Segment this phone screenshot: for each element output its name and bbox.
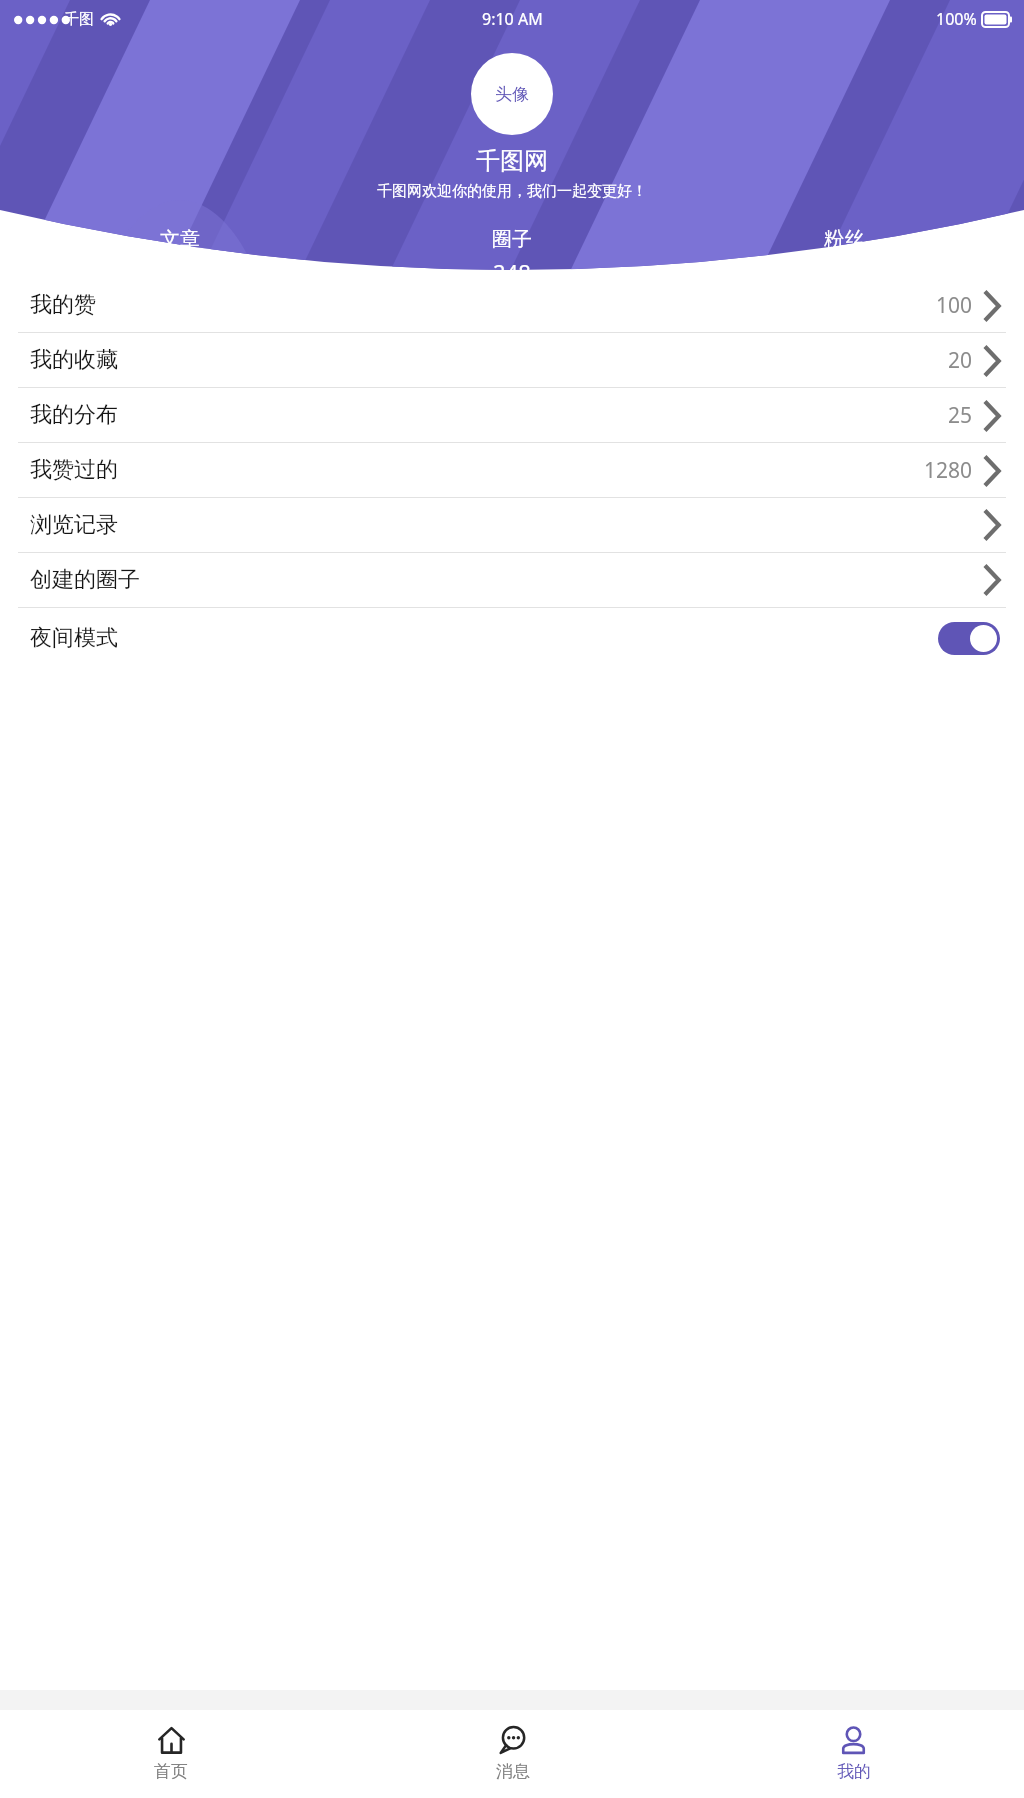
button[interactable]: 圈子 (346, 227, 678, 272)
staticText: 100% (936, 8, 977, 30)
staticText: 25 (948, 401, 973, 430)
staticText: 20 (948, 346, 973, 375)
staticText: 100 (936, 291, 973, 320)
button[interactable]: Avatar (471, 53, 553, 135)
staticText: 9:10 AM (482, 8, 543, 30)
staticText: 首页 (154, 1761, 188, 1782)
staticText: 千图 (64, 10, 94, 29)
staticText: 头像 (495, 84, 529, 105)
staticText: 文章 (160, 227, 200, 252)
button[interactable]: 创建的圈子 (0, 553, 1024, 607)
button[interactable]: 消息 (342, 1710, 683, 1798)
staticText: 248 (493, 257, 531, 272)
button[interactable]: 夜间模式 (0, 608, 1024, 668)
staticText: 我赞过的 (30, 456, 118, 484)
staticText: 浏览记录 (30, 511, 118, 539)
staticText: 我的 (837, 1761, 871, 1782)
button[interactable]: 我赞过的 (0, 443, 1024, 497)
staticText: 千图网 (476, 146, 548, 176)
button[interactable]: 首页 (0, 1710, 342, 1798)
staticText: 创建的圈子 (30, 566, 140, 594)
staticText: 圈子 (492, 227, 532, 252)
button[interactable]: 浏览记录 (0, 498, 1024, 552)
button[interactable]: Night mode toggle (938, 622, 1000, 655)
staticText: 我的收藏 (30, 346, 118, 374)
button[interactable]: 我的分布 (0, 388, 1024, 442)
button[interactable]: 我的赞 (0, 278, 1024, 332)
staticText: 消息 (496, 1761, 530, 1782)
staticText: 我的赞 (30, 291, 96, 319)
staticText: 我的分布 (30, 401, 118, 429)
staticText: 千图网欢迎你的使用，我们一起变更好！ (377, 182, 647, 201)
staticText: 1280 (924, 456, 973, 485)
staticText: 粉丝 (824, 227, 864, 252)
button[interactable]: 我的 (683, 1710, 1024, 1798)
button[interactable]: 我的收藏 (0, 333, 1024, 387)
button[interactable]: 文章 (14, 227, 346, 272)
staticText: 夜间模式 (30, 624, 118, 652)
button[interactable]: 粉丝 (678, 227, 1010, 272)
